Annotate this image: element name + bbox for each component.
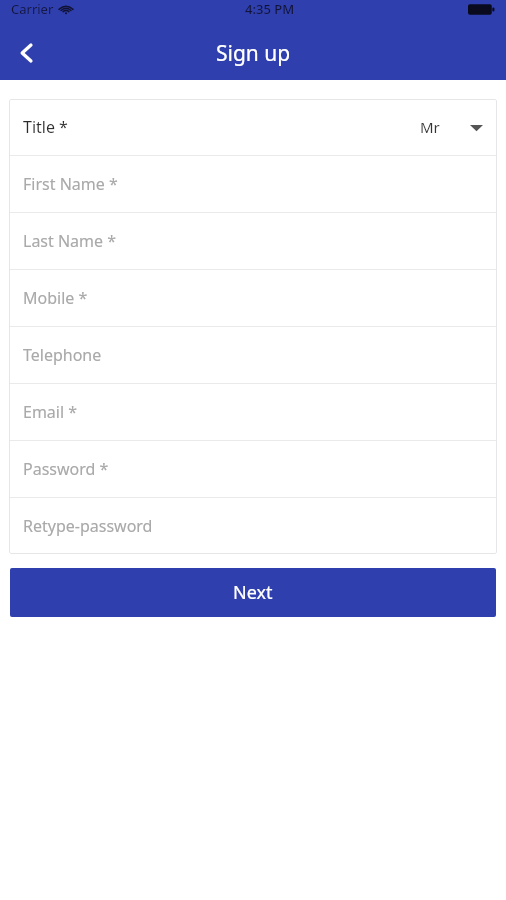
staticText: Title * (23, 116, 68, 138)
staticText: Telephone (23, 344, 102, 366)
button[interactable]: Telephone (9, 327, 497, 383)
button[interactable]: First Name * (9, 156, 497, 212)
staticText: Carrier (11, 0, 54, 18)
staticText: Password * (23, 458, 109, 480)
staticText: Mr (420, 117, 440, 137)
button[interactable]: Title * (9, 99, 497, 155)
staticText: 4:35 PM (245, 0, 295, 18)
staticText: Retype-password (23, 515, 153, 537)
button[interactable]: Mobile * (9, 270, 497, 326)
staticText: Mobile * (23, 287, 88, 309)
button[interactable]: Last Name * (9, 213, 497, 269)
staticText: First Name * (23, 173, 118, 195)
staticText: Last Name * (23, 230, 117, 252)
button[interactable]: Back (0, 26, 54, 80)
staticText: Sign up (216, 39, 291, 68)
staticText: Email * (23, 401, 78, 423)
button[interactable]: Next (10, 568, 496, 617)
button[interactable]: Retype-password (9, 498, 497, 554)
button[interactable]: Password * (9, 441, 497, 497)
staticText: Next (233, 580, 273, 605)
button[interactable]: Email * (9, 384, 497, 440)
